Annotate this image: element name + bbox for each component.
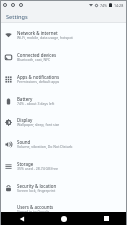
staticText: Settings — [6, 13, 28, 21]
staticText: Storage — [17, 161, 34, 167]
button[interactable]: Storage — [0, 155, 127, 177]
button[interactable]: Connected devices — [0, 46, 127, 68]
staticText: Volume, vibration, Do Not Disturb — [17, 144, 73, 149]
button[interactable]: Security & location — [0, 177, 127, 199]
staticText: 35% used - 28.74 GB free — [17, 166, 58, 171]
button[interactable]: Back — [0, 212, 43, 225]
button[interactable]: Recents — [85, 212, 127, 225]
staticText: Screen lock, fingerprint — [17, 188, 56, 193]
staticText: Battery — [17, 96, 33, 102]
staticText: Bluetooth, cast, NFC — [17, 57, 51, 62]
button[interactable]: Display — [0, 111, 127, 133]
staticText: 74% — [100, 3, 108, 8]
staticText: Permissions, default apps — [17, 79, 60, 84]
staticText: 14:28 — [114, 3, 124, 8]
button[interactable]: Users & accounts — [0, 198, 127, 220]
staticText: Security & location — [17, 183, 57, 189]
staticText: Sound — [17, 139, 31, 145]
staticText: Signed in to Google — [17, 209, 50, 214]
button[interactable]: Apps & notifications — [0, 68, 127, 90]
staticText: Apps & notifications — [17, 74, 60, 80]
staticText: 74% - about 3 days left — [17, 101, 55, 106]
button[interactable]: Sound — [0, 133, 127, 155]
button[interactable]: Home — [43, 212, 85, 225]
staticText: Network & internet — [17, 30, 58, 36]
button[interactable]: Battery — [0, 90, 127, 112]
staticText: Wi-Fi, mobile, data usage, hotspot — [17, 35, 73, 40]
button[interactable]: Network & internet — [0, 24, 127, 46]
staticText: Display — [17, 117, 33, 123]
staticText: Connected devices — [17, 52, 57, 58]
staticText: Wallpaper, sleep, font size — [17, 122, 60, 127]
staticText: Users & accounts — [17, 204, 54, 210]
